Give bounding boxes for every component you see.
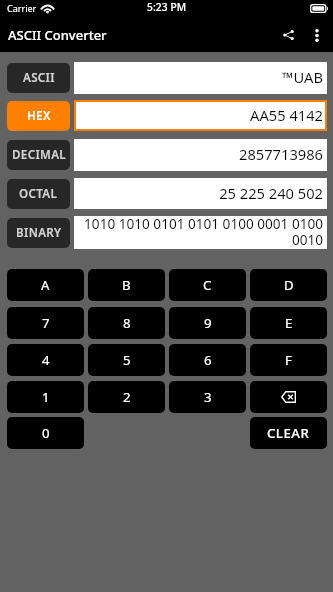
button[interactable]: Share [272,18,305,52]
button[interactable]: DECIMAL [7,140,70,170]
button[interactable]: 7 [7,307,84,339]
button[interactable]: AA55 4142 [74,100,327,131]
staticText: 5:23 PM [147,0,187,14]
staticText: ASCII [23,70,55,86]
staticText: Carrier [7,2,37,14]
staticText: 5 [123,351,131,369]
staticText: C [203,276,212,294]
button[interactable]: OCTAL [7,179,70,209]
staticText: A [41,276,50,294]
button[interactable]: ™UAB [74,62,327,94]
button[interactable]: D [250,269,327,301]
button[interactable]: 5 [88,344,165,376]
button[interactable]: C [169,269,246,301]
button[interactable]: 1 [7,381,84,413]
staticText: 1010 1010 0101 0101 0100 0001 0100 0010 [78,214,323,247]
button[interactable]: A [7,269,84,301]
staticText: 25 225 240 502 [219,183,323,203]
staticText: 2 [123,388,131,406]
button[interactable]: Backspace [250,381,327,413]
button[interactable]: 2857713986 [74,139,327,171]
button[interactable]: 8 [88,307,165,339]
button[interactable]: B [88,269,165,301]
staticText: 9 [204,314,212,332]
button[interactable]: 0 [7,417,84,449]
button[interactable]: 2 [88,381,165,413]
button[interactable]: 25 225 240 502 [74,178,327,209]
button[interactable]: 9 [169,307,246,339]
staticText: 3 [204,388,212,406]
button[interactable]: 6 [169,344,246,376]
button[interactable]: 1010 1010 0101 0101 0100 0001 0100 0010 [74,216,327,249]
staticText: 2857713986 [238,144,323,164]
button[interactable]: 3 [169,381,246,413]
staticText: DECIMAL [12,147,66,163]
button[interactable]: F [250,344,327,376]
staticText: D [284,276,294,294]
staticText: HEX [27,108,51,124]
staticText: ™UAB [282,67,323,87]
button[interactable]: E [250,307,327,339]
staticText: 0 [42,424,50,442]
staticText: F [285,351,292,369]
staticText: 8 [123,314,131,332]
staticText: B [122,276,131,294]
button[interactable]: More options [302,18,331,52]
button[interactable]: HEX [7,101,70,131]
button[interactable]: ASCII [7,63,70,93]
button[interactable]: BINARY [7,218,70,248]
staticText: ASCII Converter [8,26,107,44]
staticText: 7 [42,314,50,332]
staticText: E [285,314,293,332]
button[interactable]: 4 [7,344,84,376]
staticText: AA55 4142 [250,105,323,125]
button[interactable]: CLEAR [250,417,327,449]
staticText: CLEAR [267,424,310,442]
staticText: OCTAL [19,186,58,202]
staticText: BINARY [16,225,62,241]
staticText: 6 [204,351,212,369]
staticText: 4 [42,351,50,369]
staticText: 1 [42,388,50,406]
